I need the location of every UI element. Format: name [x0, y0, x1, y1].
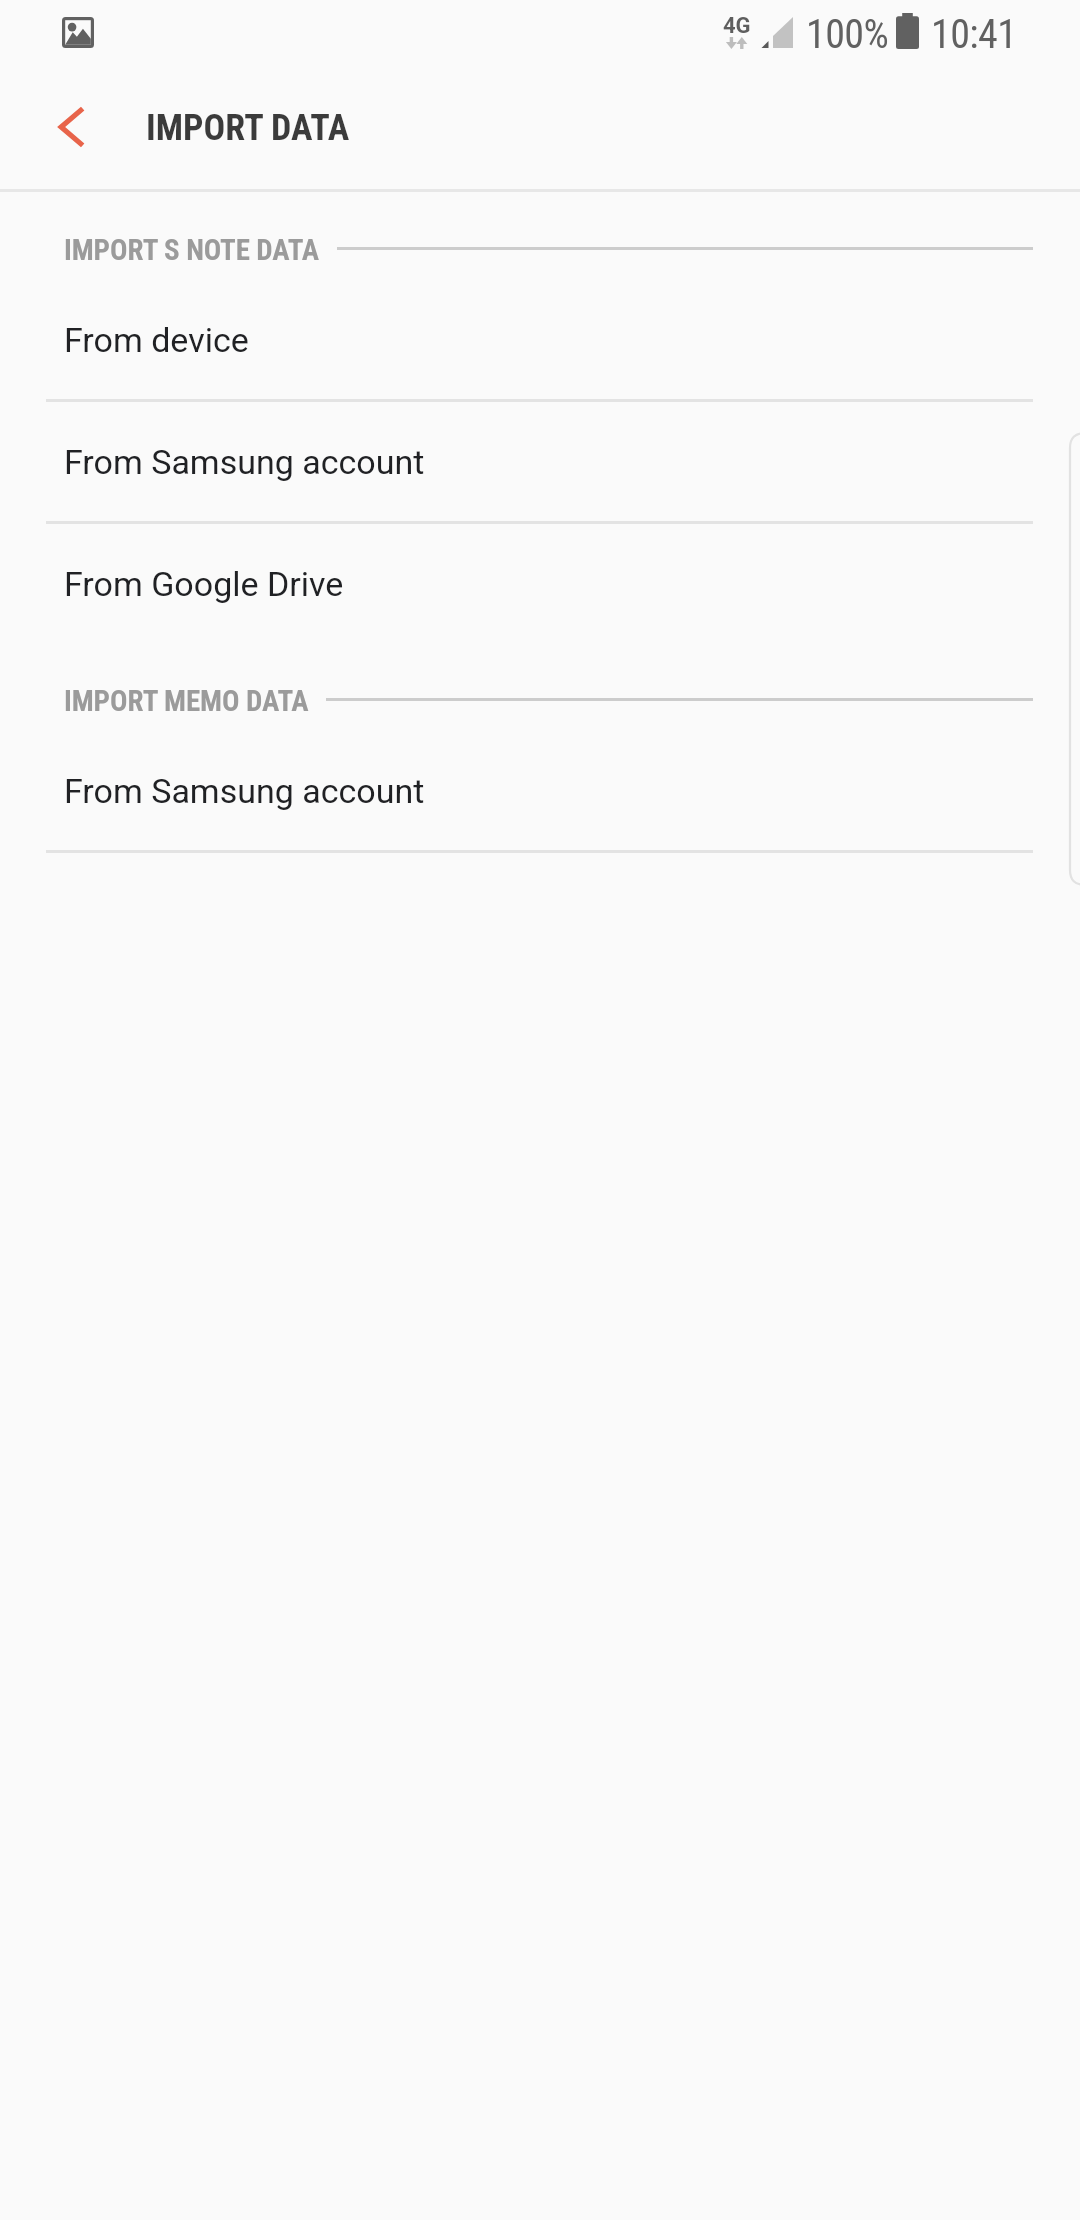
- button[interactable]: From Google Drive: [0, 524, 1080, 643]
- staticText: From Google Drive: [64, 564, 344, 604]
- button[interactable]: From Samsung account: [0, 402, 1080, 521]
- staticText: 10:41: [931, 11, 1017, 58]
- staticText: 100%: [806, 11, 889, 58]
- button[interactable]: From Samsung account: [0, 731, 1080, 850]
- staticText: 4G: [723, 13, 751, 39]
- button[interactable]: Navigate back: [12, 68, 130, 185]
- staticText: IMPORT DATA: [146, 107, 350, 149]
- button[interactable]: From device: [0, 280, 1080, 399]
- staticText: From device: [64, 320, 249, 360]
- staticText: From Samsung account: [64, 771, 425, 811]
- staticText: IMPORT MEMO DATA: [64, 684, 309, 718]
- staticText: IMPORT S NOTE DATA: [64, 233, 320, 267]
- staticText: From Samsung account: [64, 442, 425, 482]
